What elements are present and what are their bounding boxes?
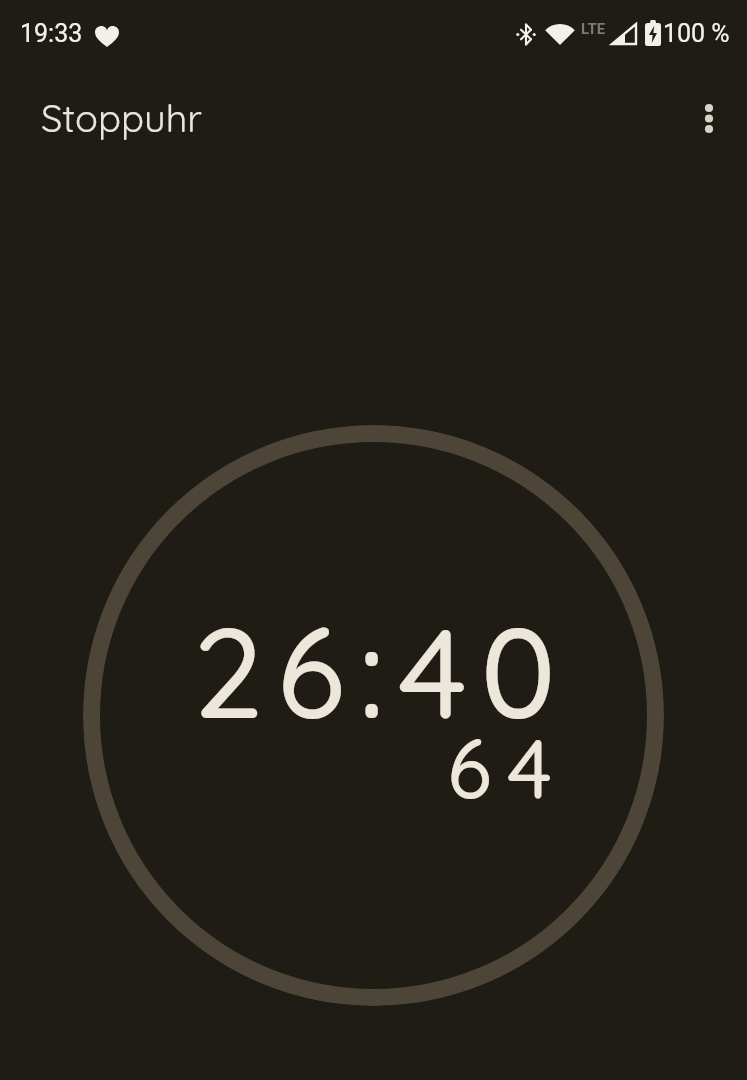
staticText: 19:33 bbox=[20, 19, 83, 48]
staticText: 100 % bbox=[663, 19, 730, 48]
staticText: Stoppuhr bbox=[41, 94, 202, 142]
staticText: LTE bbox=[581, 20, 606, 38]
button[interactable] bbox=[685, 94, 733, 142]
button[interactable] bbox=[83, 425, 664, 1006]
staticText: 26:40 bbox=[193, 592, 569, 750]
staticText: 64 bbox=[447, 716, 568, 819]
